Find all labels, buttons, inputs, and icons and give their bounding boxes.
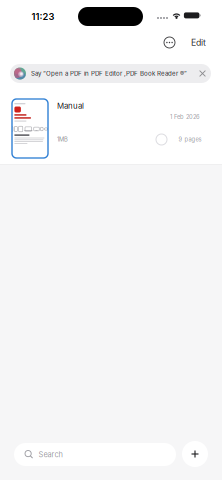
staticText: Edit — [191, 37, 206, 48]
staticText: Manual — [57, 101, 84, 111]
staticText: 9 pages — [178, 136, 201, 143]
staticText: 11:23 — [31, 11, 54, 22]
button[interactable]: Dismiss suggestion — [194, 64, 211, 83]
staticText: Say “Open a PDF in PDF Editor ,PDF Book … — [31, 70, 187, 77]
staticText: Search — [38, 450, 62, 459]
button[interactable]: Add document — [182, 441, 208, 467]
button[interactable]: Edit — [157, 34, 212, 51]
button[interactable]: Search — [14, 443, 176, 466]
staticText: 1MB — [57, 136, 68, 143]
staticText: 1 Feb 2026 — [170, 113, 200, 120]
